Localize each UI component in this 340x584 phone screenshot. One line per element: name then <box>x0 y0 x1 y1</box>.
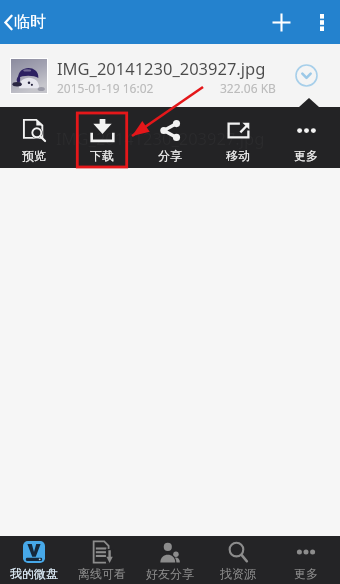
staticText: IMG_20141230_203927.jpg <box>56 127 265 149</box>
button[interactable]: 好友分享 <box>136 536 204 584</box>
button[interactable]: 更多 <box>272 536 340 584</box>
button[interactable]: IMG_20141230_203927.jpg <box>0 44 340 107</box>
button[interactable]: 分享 <box>136 107 204 168</box>
button[interactable]: 预览 <box>0 107 68 168</box>
staticText: 分享 <box>158 148 182 163</box>
staticText: 移动 <box>226 148 250 163</box>
staticText: 322.06 KB <box>220 80 276 96</box>
staticText: 下载 <box>90 148 114 163</box>
staticText: 预览 <box>22 148 46 163</box>
staticText: 好友分享 <box>146 566 194 581</box>
staticText: IMG_20141230_203927.jpg <box>57 57 266 79</box>
staticText: 更多 <box>294 566 318 581</box>
staticText: 离线可看 <box>78 566 126 581</box>
button[interactable]: Expand <box>289 44 323 107</box>
button[interactable]: 移动 <box>204 107 272 168</box>
button[interactable]: 找资源 <box>204 536 272 584</box>
staticText: 找资源 <box>220 566 256 581</box>
staticText: 我的微盘 <box>10 566 58 581</box>
staticText: 临时 <box>14 12 46 32</box>
staticText: 更多 <box>294 148 318 163</box>
button[interactable]: 我的微盘 <box>0 536 68 584</box>
button[interactable]: More options <box>304 0 340 44</box>
button[interactable]: Add <box>258 0 304 44</box>
button[interactable]: 更多 <box>272 107 340 168</box>
button[interactable]: 离线可看 <box>68 536 136 584</box>
button[interactable]: 下载 <box>68 107 136 168</box>
button[interactable]: 临时 <box>0 0 56 44</box>
staticText: 2015-01-19 16:02 <box>57 80 154 96</box>
